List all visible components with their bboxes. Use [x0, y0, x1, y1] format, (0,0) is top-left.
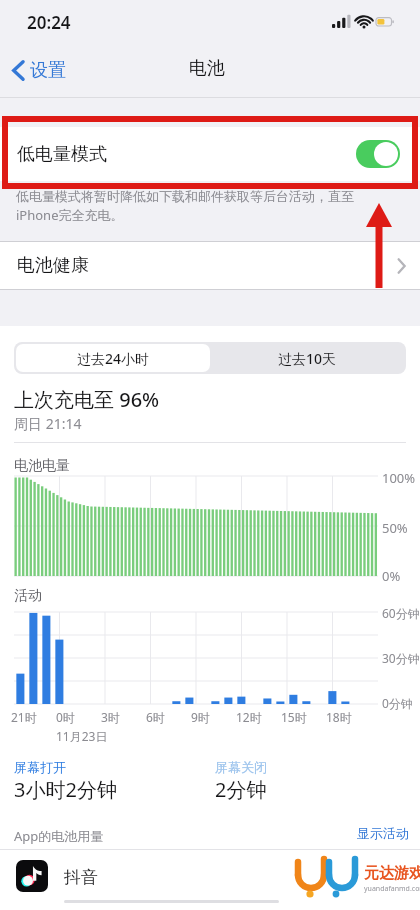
- staticText: 活动: [14, 587, 42, 605]
- staticText: 3小时2分钟: [14, 776, 117, 803]
- staticText: 9时: [191, 709, 210, 725]
- staticText: 100%: [382, 469, 416, 487]
- staticText: 低电量模式将暂时降低如下载和邮件获取等后台活动，直至: [16, 188, 354, 204]
- staticText: 0分钟: [382, 695, 413, 711]
- staticText: 电池: [189, 57, 225, 80]
- staticText: 3时: [101, 709, 120, 725]
- staticText: 60分钟: [382, 605, 420, 621]
- staticText: 0时: [56, 709, 75, 725]
- staticText: 12时: [236, 709, 262, 725]
- button[interactable]: Low Power Mode toggle, on: [356, 140, 400, 168]
- staticText: 上次充电至 96%: [14, 386, 160, 413]
- staticText: 15时: [281, 709, 307, 725]
- staticText: 50%: [382, 519, 408, 537]
- staticText: 过去10天: [278, 349, 337, 368]
- staticText: 6时: [146, 709, 165, 725]
- button[interactable]: 过去24小时: [16, 344, 210, 372]
- staticText: 设置: [30, 59, 66, 82]
- staticText: 低电量模式: [17, 143, 107, 166]
- staticText: 11月23日: [56, 728, 108, 744]
- staticText: 电池健康: [17, 254, 89, 277]
- button[interactable]: 电池健康: [0, 242, 420, 289]
- staticText: 0%: [382, 567, 401, 585]
- button[interactable]: 低电量模式: [0, 127, 420, 181]
- staticText: 屏幕打开: [14, 759, 66, 775]
- staticText: 过去24小时: [77, 349, 150, 368]
- button[interactable]: 抖音: [0, 850, 420, 910]
- staticText: yuandafanmd.com: [364, 884, 420, 894]
- staticText: 周日 21:14: [14, 414, 82, 433]
- staticText: 30分钟: [382, 650, 420, 666]
- staticText: 18时: [326, 709, 352, 725]
- staticText: 屏幕关闭: [215, 759, 267, 775]
- staticText: iPhone完全充电。: [16, 206, 124, 224]
- staticText: 20:24: [27, 11, 71, 34]
- button[interactable]: 过去10天: [210, 344, 404, 372]
- staticText: 抖音: [64, 867, 98, 888]
- staticText: 21时: [11, 709, 37, 725]
- button[interactable]: 显示活动: [357, 825, 409, 841]
- staticText: 2分钟: [215, 776, 267, 803]
- staticText: App的电池用量: [14, 827, 104, 845]
- staticText: 电池电量: [14, 457, 70, 475]
- staticText: 元达游戏: [364, 864, 420, 883]
- button[interactable]: 设置: [8, 53, 70, 87]
- staticText: 显示活动: [357, 825, 409, 841]
- other: Signal, Wi-Fi and battery status: [332, 14, 394, 32]
